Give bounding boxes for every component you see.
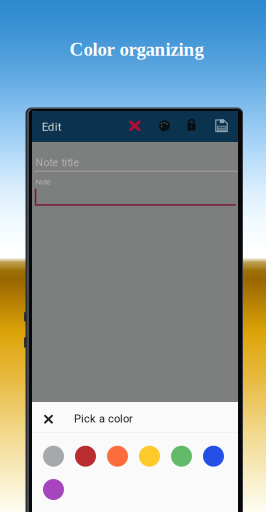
staticText: Color organizing [70, 39, 204, 60]
button[interactable]: Lock [178, 112, 204, 138]
button[interactable]: Red [75, 446, 96, 467]
button[interactable]: Blue [203, 446, 224, 467]
staticText: Note title [35, 156, 79, 169]
staticText: Note [36, 177, 51, 186]
button[interactable]: Yellow [139, 446, 160, 467]
button[interactable]: Purple [43, 479, 64, 500]
button[interactable]: Colour [151, 113, 177, 139]
staticText: Edit [42, 120, 62, 134]
button[interactable]: Discard [122, 113, 148, 139]
button[interactable]: Orange [107, 446, 128, 467]
button[interactable]: Grey [43, 446, 64, 467]
staticText: Pick a color [74, 412, 133, 425]
button[interactable]: Save [208, 113, 234, 139]
button[interactable]: Close [31, 402, 65, 436]
button[interactable]: Green [171, 446, 192, 467]
